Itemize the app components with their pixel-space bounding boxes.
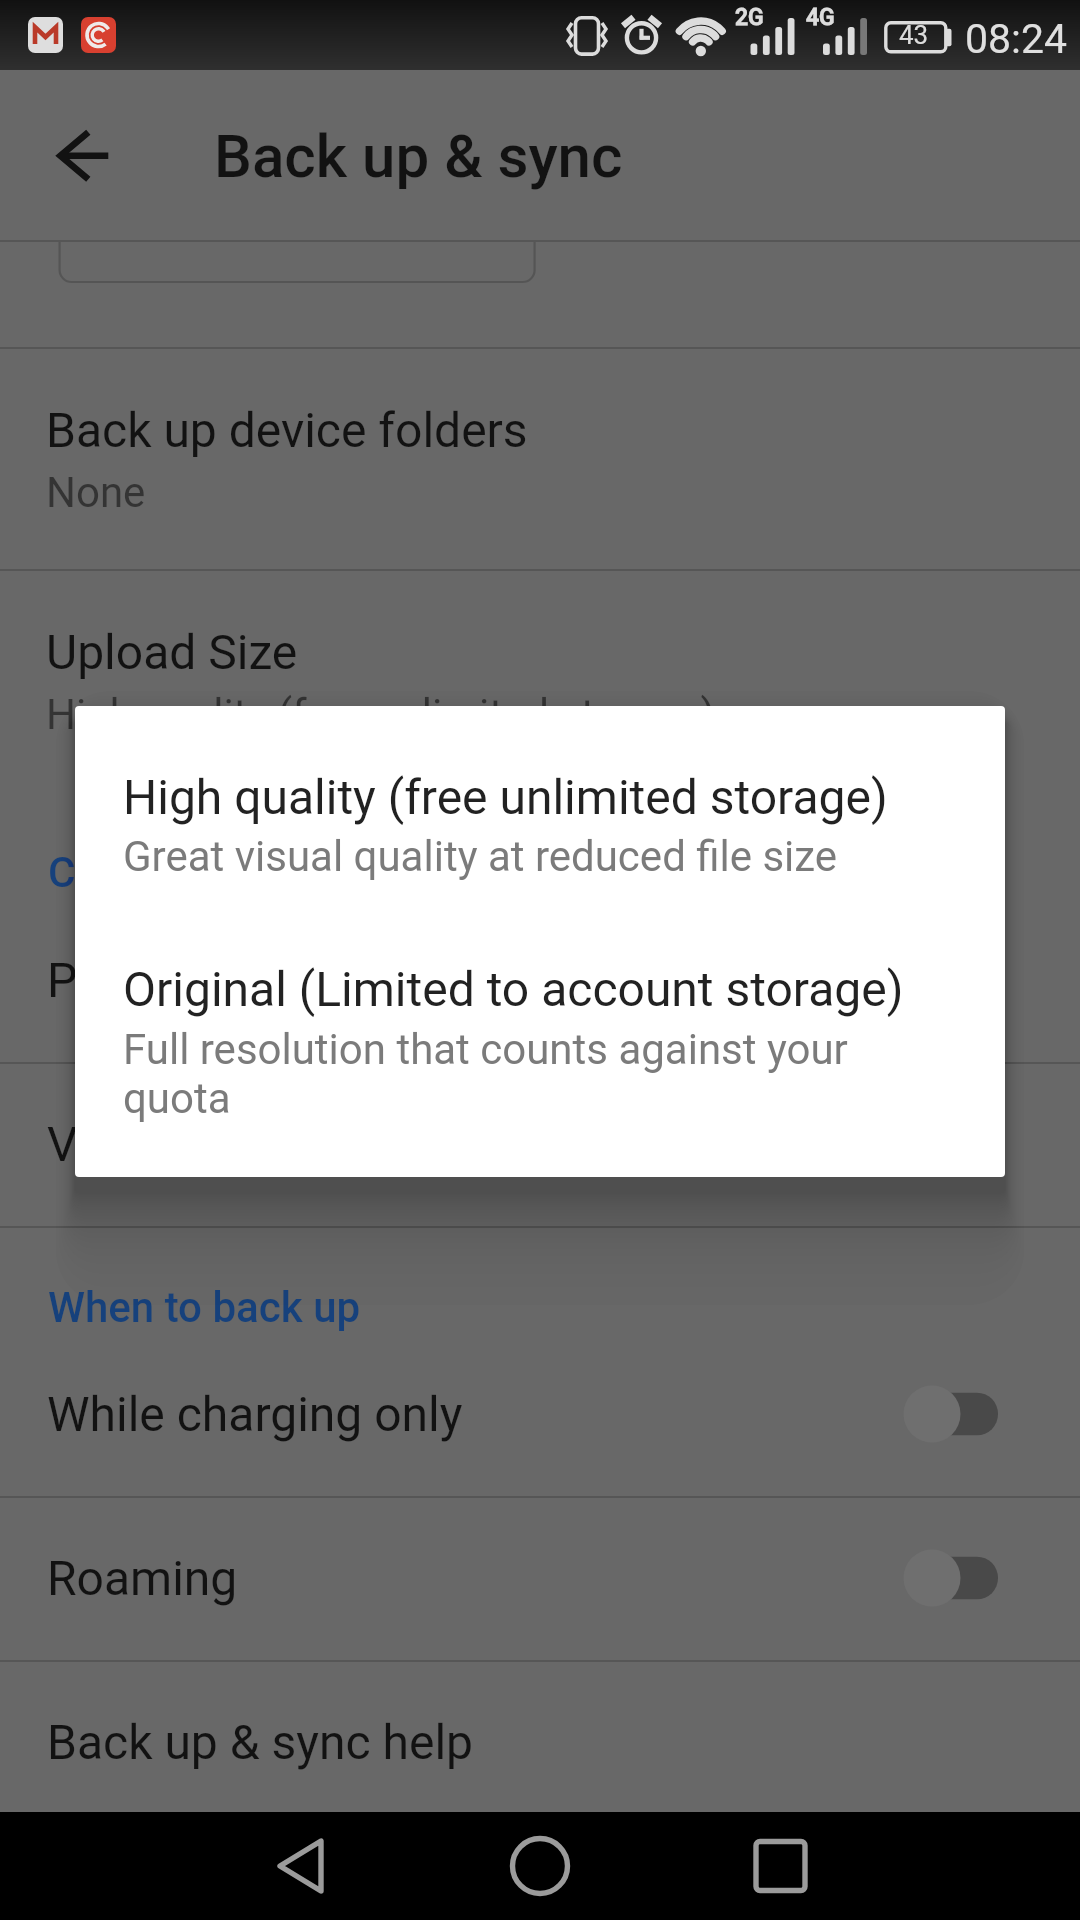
staticText: Back up device folders [46, 402, 528, 458]
staticText: 4G [806, 4, 835, 31]
button[interactable]: High quality (free unlimited storage) [75, 706, 1005, 942]
staticText: Full resolution that counts against your… [123, 1025, 923, 1123]
staticText: High quality (free unlimited storage) [46, 690, 716, 739]
button[interactable]: Videos [0, 1062, 1080, 1226]
staticText: Original (Limited to account storage) [123, 961, 904, 1017]
staticText: Back up & sync [214, 121, 623, 191]
button[interactable]: Navigate up [36, 108, 132, 204]
button[interactable]: Back up & sync help [0, 1660, 1080, 1812]
button[interactable]: Roaming [0, 1496, 1080, 1660]
staticText: Cellular data back up [48, 848, 443, 897]
staticText: Photos [47, 952, 199, 1008]
staticText: 08:24 [965, 15, 1068, 63]
staticText: High quality (free unlimited storage) [123, 769, 888, 825]
button[interactable]: Back [240, 1812, 360, 1920]
staticText: Great visual quality at reduced file siz… [123, 832, 838, 881]
staticText: Back up & sync help [47, 1714, 473, 1770]
button[interactable]: Home [480, 1812, 600, 1920]
button[interactable]: Recent apps [720, 1812, 840, 1920]
button[interactable]: Upload Size [0, 569, 1080, 791]
button[interactable]: Original (Limited to account storage) [75, 942, 1005, 1177]
staticText: When to back up [48, 1283, 361, 1332]
staticText: None [46, 468, 146, 517]
staticText: Roaming [47, 1550, 238, 1606]
button[interactable]: Back up device folders [0, 347, 1080, 569]
staticText: Upload Size [46, 624, 298, 680]
staticText: 43 [899, 20, 929, 50]
button[interactable]: While charging only [0, 1332, 1080, 1496]
staticText: While charging only [47, 1386, 463, 1442]
staticText: 2G [735, 4, 764, 31]
button[interactable]: Photos [0, 898, 1080, 1062]
staticText: Videos [47, 1116, 194, 1172]
